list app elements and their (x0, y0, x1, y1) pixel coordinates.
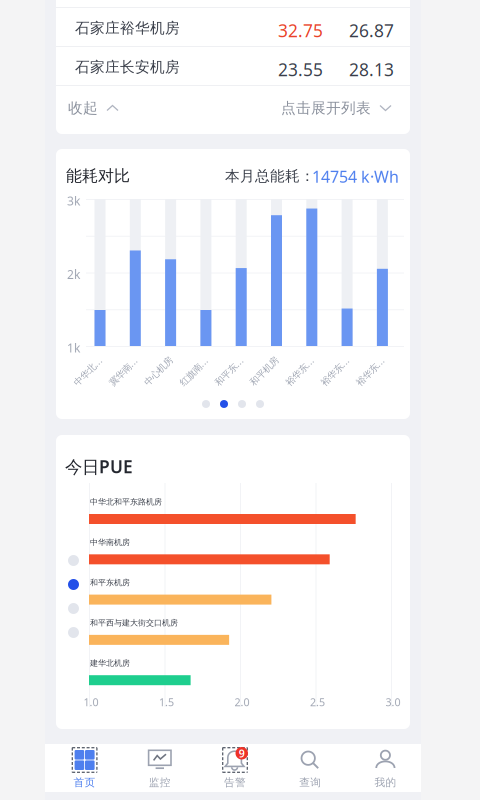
button[interactable]: 我的 (346, 744, 421, 792)
staticText: 中心机房 (132, 354, 168, 366)
staticText: 红旗南机… (167, 354, 203, 366)
staticText: 本月总能耗： (225, 167, 315, 185)
button[interactable]: 收起 (62, 86, 125, 130)
staticText: 石家庄长安机房 (75, 58, 180, 76)
staticText: 我的 (374, 776, 396, 789)
button[interactable]: 首页 (45, 744, 120, 792)
button[interactable]: 点击展开列表 (275, 86, 398, 130)
staticText: 2k (67, 266, 80, 282)
staticText: 冀华南与… (96, 354, 132, 366)
staticText: 中华北机… (61, 354, 97, 366)
staticText: 1.5 (159, 695, 174, 709)
staticText: 23.55 (278, 58, 323, 81)
staticText: 点击展开列表 (281, 99, 371, 117)
staticText: 能耗对比 (66, 166, 130, 186)
staticText: 3.0 (385, 695, 400, 709)
staticText: 1k (67, 340, 80, 356)
staticText: 裕华东机… (273, 354, 309, 366)
staticText: 28.13 (349, 58, 394, 81)
staticText: 和平东机房 (90, 578, 130, 587)
button[interactable]: 监控 (120, 744, 195, 792)
button[interactable]: 9 (195, 744, 271, 792)
staticText: 查询 (299, 776, 321, 789)
staticText: 中华南机房 (90, 537, 130, 547)
staticText: 中华北和平东路机房 (90, 497, 162, 507)
staticText: 石家庄裕华机房 (75, 19, 180, 37)
staticText: 32.75 (278, 19, 323, 42)
staticText: 今日PUE (65, 455, 133, 478)
staticText: 裕华东机… (308, 354, 344, 366)
staticText: 2.0 (234, 695, 249, 709)
staticText: 裕华东机… (343, 354, 379, 366)
staticText: 收起 (68, 99, 98, 117)
staticText: 14754 k·Wh (312, 166, 399, 187)
staticText: 建华北机房 (90, 658, 130, 668)
staticText: 监控 (149, 776, 171, 789)
staticText: 和平西与建大街交口机房 (90, 618, 178, 628)
staticText: 和平机房 (237, 354, 273, 366)
staticText: 和平东机… (202, 354, 238, 366)
staticText: 2.5 (310, 695, 325, 709)
staticText: 9 (239, 746, 245, 760)
staticText: 告警 (224, 776, 246, 789)
staticText: 26.87 (349, 19, 394, 42)
button[interactable]: 查询 (271, 744, 346, 792)
staticText: 首页 (74, 776, 96, 789)
staticText: 3k (67, 193, 80, 209)
staticText: 1.0 (83, 695, 98, 709)
